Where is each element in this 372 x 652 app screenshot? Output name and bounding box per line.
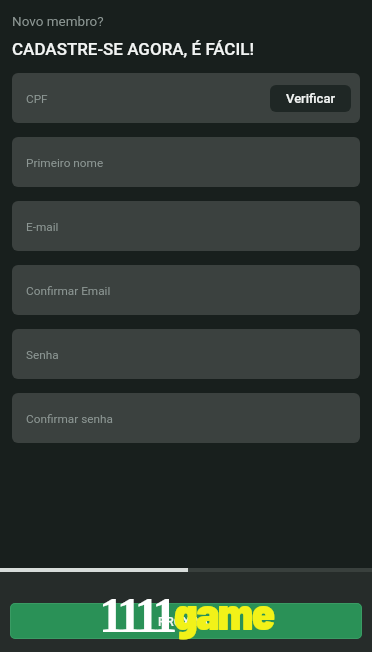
button[interactable]: CPF	[12, 73, 360, 123]
staticText: 1111	[99, 587, 173, 642]
staticText: CADASTRE-SE AGORA, É FÁCIL!	[12, 39, 254, 59]
button[interactable]: E-mail	[12, 201, 360, 251]
staticText: game	[174, 584, 274, 639]
staticText: Senha	[26, 348, 59, 362]
staticText: E-mail	[26, 220, 59, 234]
staticText: Novo membro?	[12, 13, 104, 29]
button[interactable]: Senha	[12, 329, 360, 379]
staticText: Verificar	[286, 91, 335, 106]
staticText: Confirmar Email	[26, 284, 111, 298]
button[interactable]: Primeiro nome	[12, 137, 360, 187]
button[interactable]: Confirmar Email	[12, 265, 360, 315]
button[interactable]: Verificar	[270, 85, 351, 112]
button[interactable]: Confirmar senha	[12, 393, 360, 443]
staticText: PRÓXIMO	[158, 614, 214, 629]
button[interactable]: PRÓXIMO	[10, 603, 362, 639]
staticText: Confirmar senha	[26, 412, 113, 426]
staticText: CPF	[26, 92, 48, 106]
staticText: Primeiro nome	[26, 156, 104, 170]
